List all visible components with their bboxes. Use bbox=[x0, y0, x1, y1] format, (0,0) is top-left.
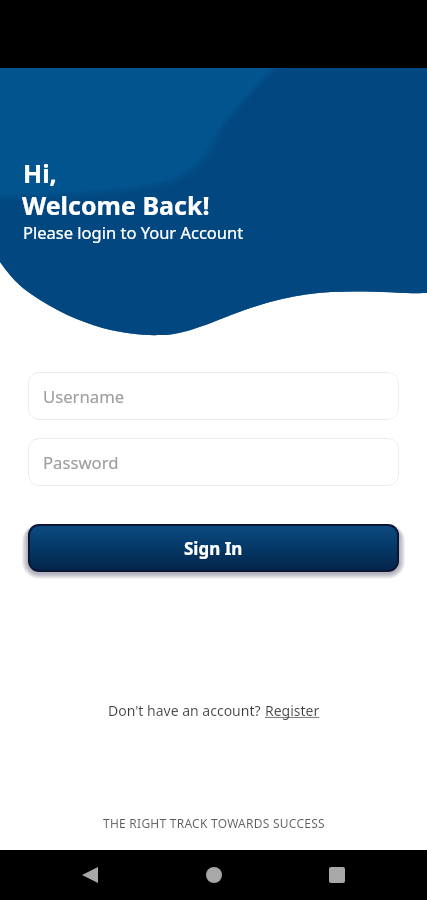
button[interactable]: Password bbox=[28, 438, 399, 486]
button[interactable]: Home bbox=[194, 855, 234, 895]
staticText: Sign In bbox=[184, 537, 243, 560]
button[interactable]: Sign In bbox=[30, 526, 397, 570]
button[interactable]: Username bbox=[28, 372, 399, 420]
staticText: Password bbox=[43, 451, 119, 474]
staticText: Username bbox=[43, 385, 125, 408]
staticText: THE RIGHT TRACK TOWARDS SUCCESS bbox=[103, 815, 325, 831]
staticText: Hi, bbox=[23, 156, 57, 190]
staticText: Please login to Your Account bbox=[23, 221, 244, 243]
button[interactable]: Back bbox=[70, 855, 110, 895]
staticText: Register bbox=[265, 701, 320, 720]
button[interactable]: Recent apps bbox=[317, 855, 357, 895]
staticText: Welcome Back! bbox=[22, 188, 210, 222]
button[interactable]: Register bbox=[265, 701, 320, 720]
staticText: Don't have an account? bbox=[108, 701, 265, 720]
